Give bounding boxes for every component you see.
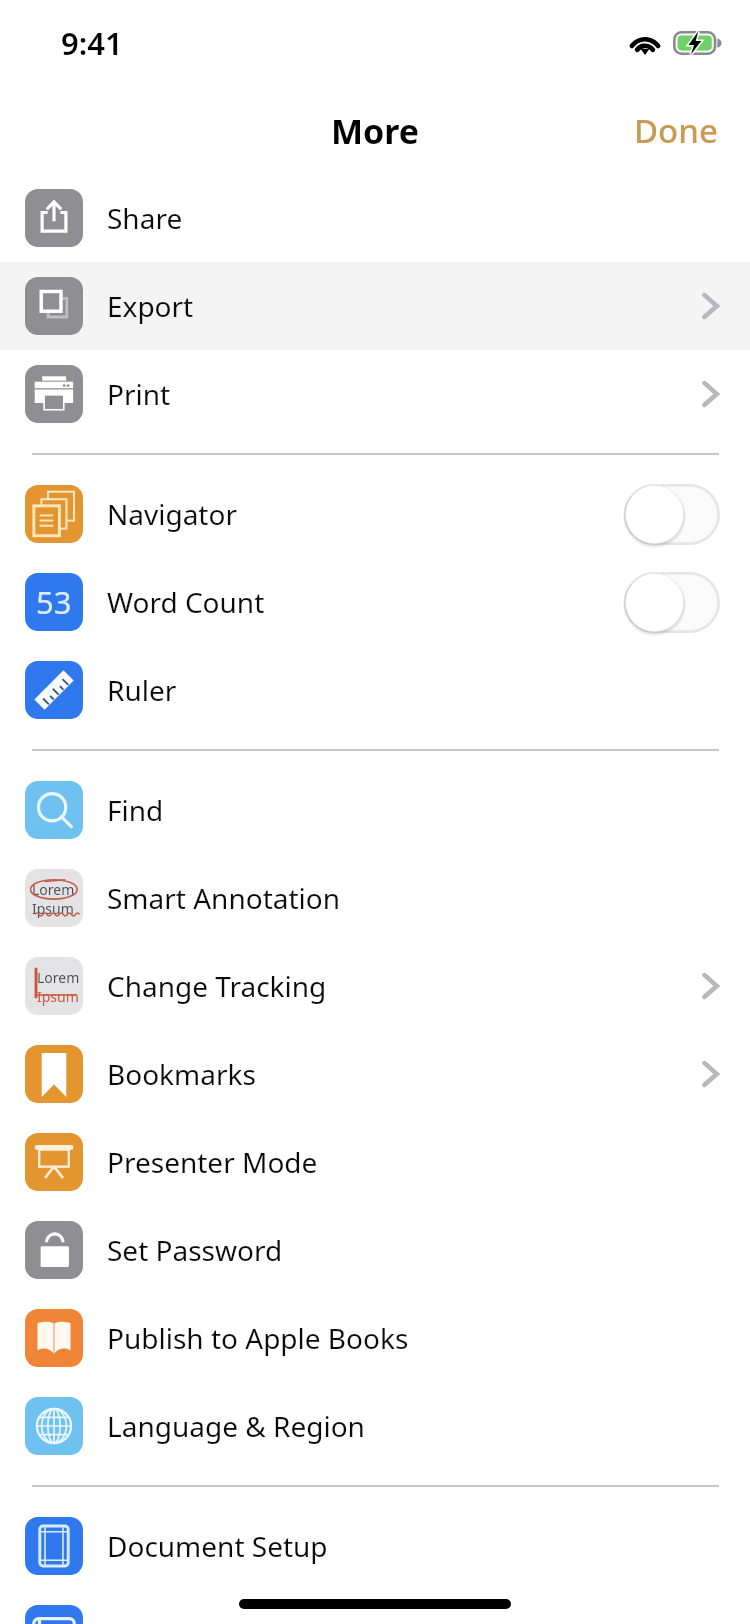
- button[interactable]: Share: [0, 174, 750, 262]
- button[interactable]: Lorem: [0, 854, 750, 942]
- button[interactable]: Bookmarks: [0, 1030, 750, 1118]
- button[interactable]: Navigator switch: [624, 484, 720, 545]
- button[interactable]: Print: [0, 350, 750, 438]
- other: Export details: [698, 289, 732, 323]
- other: Bookmarks details: [698, 1057, 732, 1091]
- staticText: Ipsum: [37, 987, 79, 1006]
- staticText: Presenter Mode: [107, 1143, 318, 1181]
- staticText: Find: [107, 791, 164, 829]
- staticText: Print: [107, 375, 171, 413]
- button[interactable]: Lorem: [0, 942, 750, 1030]
- staticText: 9:41: [61, 22, 123, 64]
- staticText: Set Password: [107, 1231, 283, 1269]
- button[interactable]: Ruler: [0, 646, 750, 734]
- staticText: 53: [36, 581, 72, 623]
- staticText: Document Setup: [107, 1527, 328, 1565]
- staticText: Change Tracking: [107, 967, 327, 1005]
- staticText: Bookmarks: [107, 1055, 256, 1093]
- staticText: Smart Annotation: [107, 879, 341, 917]
- staticText: Export: [107, 287, 194, 325]
- staticText: Ruler: [107, 671, 177, 709]
- other: Print details: [698, 377, 732, 411]
- button[interactable]: 53: [0, 558, 750, 646]
- staticText: Done: [634, 108, 718, 153]
- button[interactable]: Done: [604, 94, 750, 167]
- staticText: Language & Region: [107, 1407, 365, 1445]
- staticText: Share: [107, 199, 183, 237]
- staticText: Publish to Apple Books: [107, 1319, 409, 1357]
- button[interactable]: Export: [0, 262, 750, 350]
- button[interactable]: Publish to Apple Books: [0, 1294, 750, 1382]
- staticText: Navigator: [107, 495, 237, 533]
- button[interactable]: Language & Region: [0, 1382, 750, 1470]
- staticText: Lorem: [32, 880, 75, 899]
- button[interactable]: Settings: [0, 1590, 750, 1624]
- staticText: Lorem: [37, 968, 80, 987]
- other: Change Tracking details: [698, 969, 732, 1003]
- staticText: Word Count: [107, 583, 265, 621]
- staticText: More: [331, 108, 420, 154]
- staticText: Ipsum: [32, 899, 74, 918]
- button[interactable]: Navigator: [0, 470, 750, 558]
- button[interactable]: Word Count switch: [624, 572, 720, 633]
- button[interactable]: Presenter Mode: [0, 1118, 750, 1206]
- button[interactable]: Find: [0, 766, 750, 854]
- button[interactable]: Set Password: [0, 1206, 750, 1294]
- button[interactable]: Document Setup: [0, 1502, 750, 1590]
